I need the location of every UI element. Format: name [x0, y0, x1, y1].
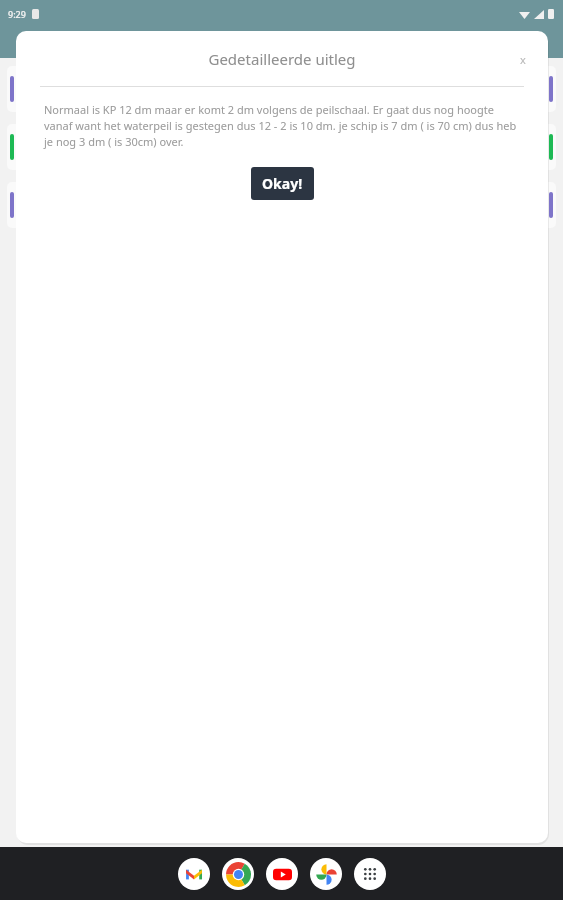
button[interactable]: Apps — [354, 858, 386, 890]
button[interactable]: Chrome — [222, 858, 254, 890]
button[interactable]: YouTube — [266, 858, 298, 890]
staticText: x — [520, 52, 526, 67]
staticText: 9:29 — [8, 8, 26, 20]
button[interactable]: Google Photos — [310, 858, 342, 890]
button[interactable]: Sluiten — [508, 44, 538, 74]
button[interactable]: Okay! — [251, 167, 314, 200]
button[interactable]: Gmail — [178, 858, 210, 890]
staticText: Normaal is KP 12 dm maar er komt 2 dm vo… — [44, 102, 522, 149]
staticText: Okay! — [262, 174, 303, 193]
staticText: Gedetailleerde uitleg — [208, 49, 356, 69]
